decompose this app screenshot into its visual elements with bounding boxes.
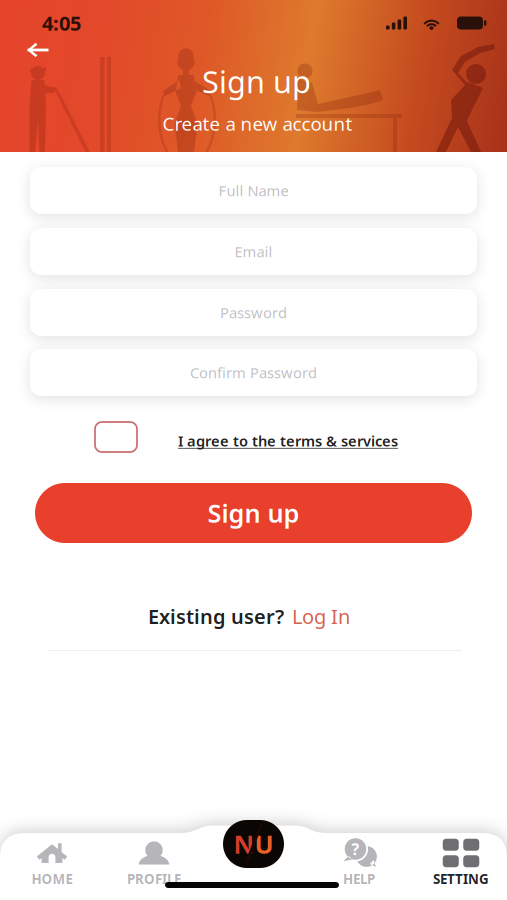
staticText: Existing user? (148, 603, 284, 630)
button[interactable]: Log In (292, 599, 350, 634)
button[interactable]: HOME (4, 838, 100, 896)
button[interactable]: NU home (223, 820, 284, 868)
staticText: Sign up (207, 496, 299, 530)
button[interactable]: Email (30, 228, 477, 275)
button[interactable]: Back (14, 30, 62, 70)
button[interactable]: Full Name (30, 167, 477, 214)
button[interactable]: Sign up (35, 483, 472, 543)
staticText: HOME (31, 870, 72, 888)
staticText: Full Name (218, 181, 288, 200)
button[interactable]: Password (30, 289, 477, 336)
button[interactable]: ? (311, 838, 407, 896)
staticText: SETTING (433, 870, 489, 888)
staticText: PROFILE (127, 870, 181, 888)
staticText: Password (220, 303, 287, 322)
staticText: HELP (343, 870, 375, 888)
staticText: U (254, 827, 273, 861)
button[interactable]: I agree to the terms & services (178, 425, 398, 456)
button[interactable]: Agree to the terms and services (89, 416, 143, 458)
staticText: 4:05 (42, 10, 81, 36)
button[interactable]: Confirm Password (30, 349, 477, 396)
staticText: Confirm Password (190, 363, 317, 382)
staticText: Create a new account (162, 111, 352, 136)
staticText: Log In (292, 603, 350, 630)
staticText: Email (234, 242, 272, 261)
staticText: N (233, 827, 254, 861)
staticText: I agree to the terms & services (178, 431, 398, 450)
staticText: Sign up (202, 61, 311, 102)
button[interactable]: SETTING (413, 838, 507, 896)
button[interactable]: PROFILE (106, 838, 202, 896)
staticText: ? (351, 838, 359, 860)
